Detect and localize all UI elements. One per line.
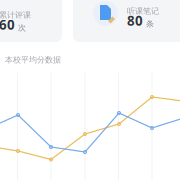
staticText: 累计评课 — [0, 10, 31, 20]
staticText: 80 — [127, 12, 143, 29]
staticText: 条 — [146, 19, 154, 29]
button[interactable]: 听课笔记 — [93, 0, 180, 29]
staticText: 次 — [18, 23, 26, 33]
button[interactable]: 累计评课 — [0, 0, 61, 29]
staticText: 本校平均分数据 — [5, 55, 61, 65]
staticText: 听课笔记 — [127, 6, 159, 16]
staticText: 60 — [0, 16, 15, 33]
